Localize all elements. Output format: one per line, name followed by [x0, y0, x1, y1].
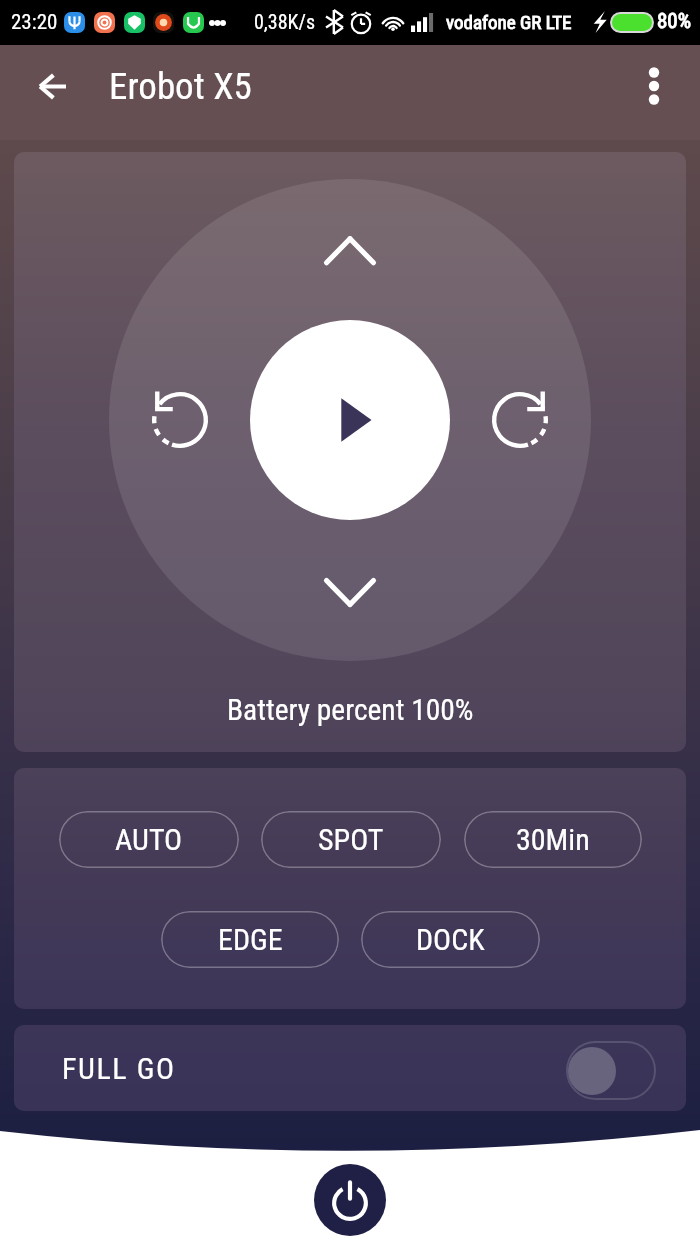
button[interactable]: Play: [250, 320, 450, 520]
button[interactable]: DOCK: [361, 911, 540, 968]
staticText: 30Min: [516, 822, 590, 857]
button[interactable]: 30Min: [464, 811, 642, 868]
staticText: AUTO: [115, 822, 183, 857]
button[interactable]: SPOT: [261, 811, 441, 868]
button[interactable]: EDGE: [161, 911, 339, 968]
staticText: FULL GO: [62, 1051, 176, 1086]
button[interactable]: Power: [314, 1164, 386, 1236]
staticText: EDGE: [218, 922, 283, 957]
staticText: 80%: [657, 9, 692, 34]
staticText: Erobot X5: [109, 65, 252, 108]
staticText: 0,38K/s: [254, 10, 316, 33]
staticText: SPOT: [318, 822, 384, 857]
button[interactable]: More options: [624, 63, 684, 123]
button[interactable]: Rotate right: [475, 375, 565, 465]
staticText: DOCK: [416, 922, 485, 957]
button[interactable]: Back: [20, 61, 84, 125]
button[interactable]: Rotate left: [135, 375, 225, 465]
button[interactable]: FULL GO: [14, 1025, 686, 1111]
staticText: vodafone GR LTE: [446, 11, 572, 33]
button[interactable]: AUTO: [59, 811, 239, 868]
staticText: Battery percent 100%: [227, 693, 474, 728]
staticText: 23:20: [11, 10, 58, 35]
